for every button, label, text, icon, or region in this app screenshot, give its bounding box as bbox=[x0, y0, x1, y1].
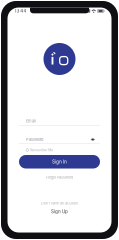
button[interactable]: Sign In bbox=[19, 155, 100, 168]
staticText: Remember Me bbox=[30, 148, 53, 152]
staticText: Don't have an account bbox=[41, 201, 78, 205]
staticText: 13:44 bbox=[14, 8, 26, 14]
staticText: Sign Up bbox=[51, 209, 68, 214]
button[interactable]: Sign Up bbox=[51, 208, 68, 214]
button[interactable]: Remember Me bbox=[19, 147, 100, 153]
staticText: Sign In bbox=[52, 159, 67, 165]
staticText: Forgot Password bbox=[46, 175, 73, 180]
staticText: Email bbox=[26, 119, 36, 123]
staticText: Password bbox=[26, 137, 43, 142]
button[interactable]: Forgot Password bbox=[19, 174, 100, 180]
